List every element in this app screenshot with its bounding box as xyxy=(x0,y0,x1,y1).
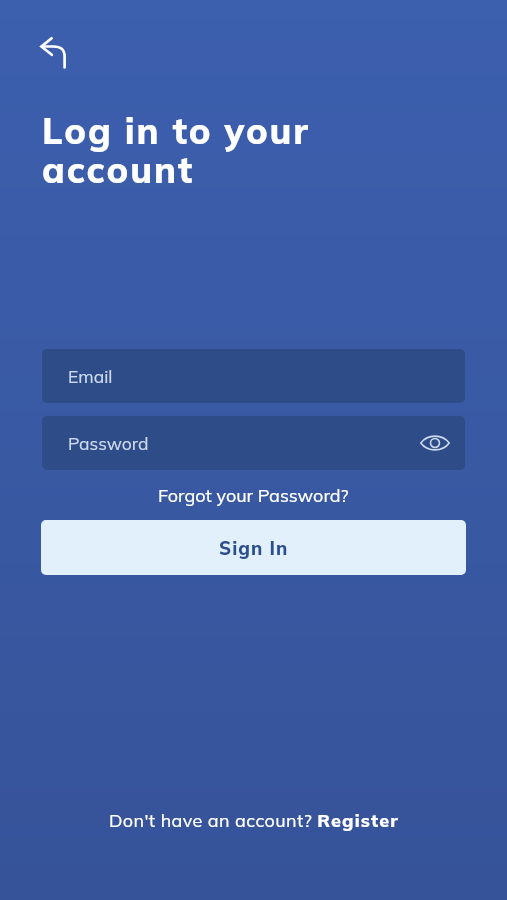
button[interactable]: Don't have an account? Register xyxy=(0,806,507,834)
staticText: Forgot your Password? xyxy=(158,484,349,507)
button[interactable]: Show password xyxy=(417,425,453,461)
staticText: Email xyxy=(68,365,113,387)
staticText: Log in to your account xyxy=(42,108,311,192)
staticText: Sign In xyxy=(219,536,289,559)
button[interactable]: Sign In xyxy=(41,520,466,575)
staticText: Don't have an account? Register xyxy=(109,809,399,832)
button[interactable]: Forgot your Password? xyxy=(0,482,507,508)
staticText: Password xyxy=(68,432,149,454)
button[interactable]: Email xyxy=(42,349,465,403)
button[interactable]: Back xyxy=(30,22,78,70)
button[interactable]: Password xyxy=(42,416,465,470)
